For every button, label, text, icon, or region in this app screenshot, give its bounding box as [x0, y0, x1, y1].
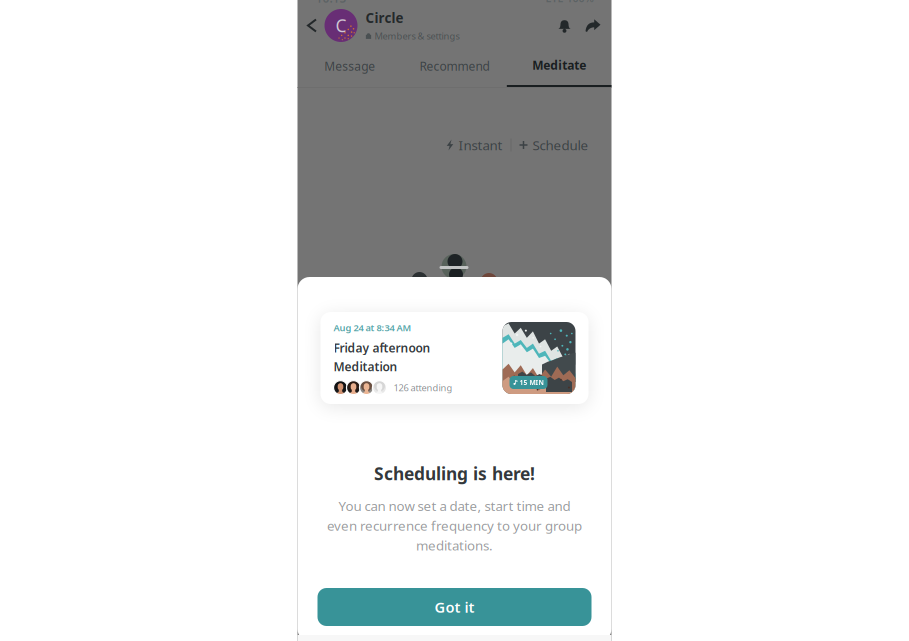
staticText: You can now set a date, start time and	[338, 497, 570, 515]
staticText: Members & settings	[374, 30, 459, 42]
staticText: Message	[324, 58, 375, 74]
button[interactable]: Meditate	[507, 45, 611, 87]
staticText: 10:15	[315, 0, 346, 6]
staticText: Meditation	[333, 359, 397, 375]
staticText: meditations.	[416, 536, 493, 554]
staticText: Instant	[458, 136, 502, 154]
button[interactable]: Got it	[317, 588, 591, 626]
staticText: Circle	[365, 9, 403, 27]
button[interactable]: Recommend	[402, 45, 507, 87]
staticText: Aug 24 at 8:34 AM	[333, 321, 411, 334]
button[interactable]: Notifications	[549, 6, 579, 45]
button[interactable]: Back	[299, 6, 324, 45]
staticText: Got it	[434, 597, 474, 617]
staticText: 126 attending	[393, 381, 452, 394]
button[interactable]: Instant	[438, 134, 510, 156]
button[interactable]: Share	[579, 6, 606, 45]
staticText: LTE 100%	[545, 0, 593, 5]
staticText: Schedule	[532, 136, 588, 154]
button[interactable]: Message	[297, 45, 402, 87]
button[interactable]: Schedule	[511, 134, 596, 156]
staticText: 15 MIN	[519, 378, 543, 387]
staticText: Friday afternoon	[333, 340, 430, 356]
staticText: Recommend	[419, 58, 489, 74]
staticText: Meditate	[532, 57, 586, 73]
staticText: Scheduling is here!	[374, 462, 535, 485]
staticText: C	[335, 14, 346, 37]
staticText: even recurrence frequency to your group	[327, 517, 582, 534]
